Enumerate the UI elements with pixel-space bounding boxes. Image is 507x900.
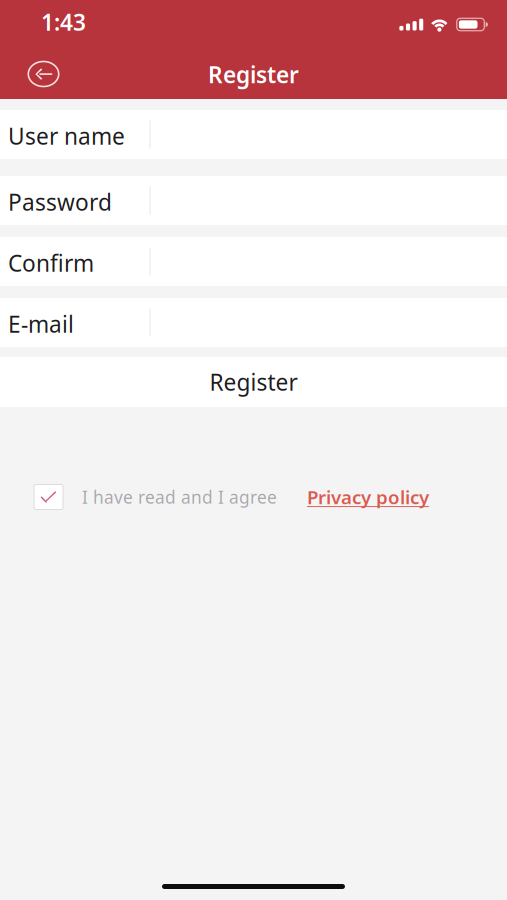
staticText: Register [209, 367, 297, 397]
staticText: E-mail [8, 309, 74, 339]
button[interactable]: Privacy policy [307, 480, 431, 514]
button[interactable]: E-mail [0, 298, 507, 347]
staticText: Register [208, 59, 299, 89]
staticText: Privacy policy [307, 485, 429, 509]
staticText: User name [8, 121, 125, 151]
button[interactable]: Register [0, 357, 507, 407]
button[interactable]: Back [22, 46, 66, 96]
button[interactable]: Confirm [0, 237, 507, 286]
button[interactable]: User name [0, 110, 507, 159]
staticText: 1:43 [41, 7, 86, 37]
staticText: Password [8, 187, 112, 217]
button[interactable]: Password [0, 176, 507, 225]
staticText: Confirm [8, 248, 94, 278]
staticText: I have read and I agree [82, 485, 277, 508]
button[interactable]: Agree to terms [0, 478, 82, 516]
